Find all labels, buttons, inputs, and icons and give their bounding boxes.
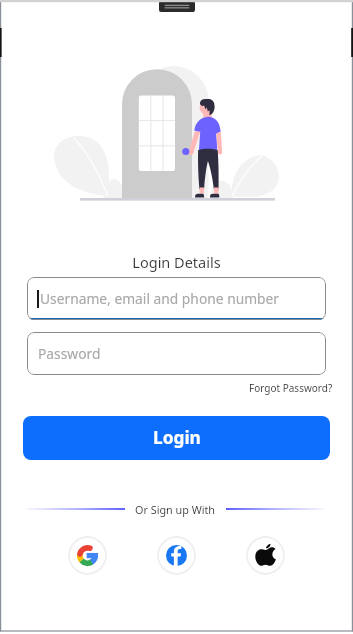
- button[interactable]: Login: [23, 416, 330, 460]
- button[interactable]: Password: [27, 332, 326, 375]
- button[interactable]: Sign in with Apple: [246, 536, 285, 575]
- button[interactable]: Sign in with Facebook: [157, 536, 196, 575]
- staticText: Password: [38, 344, 101, 363]
- staticText: Login Details: [0, 252, 353, 272]
- button[interactable]: Username, email and phone number: [27, 277, 326, 320]
- staticText: Or Sign up With: [135, 502, 216, 517]
- staticText: Login: [153, 426, 201, 450]
- staticText: Username, email and phone number: [40, 289, 280, 308]
- button[interactable]: Sign in with Google: [68, 536, 107, 575]
- button[interactable]: Forgot Password?: [249, 381, 333, 395]
